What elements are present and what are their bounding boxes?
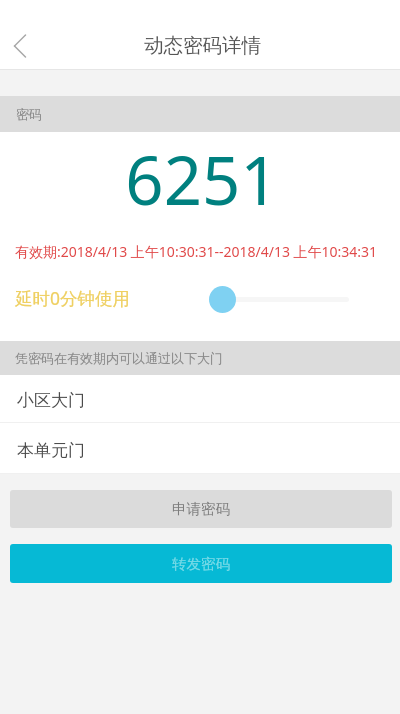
button[interactable]: 小区大门 bbox=[0, 375, 400, 422]
button[interactable]: 申请密码 bbox=[10, 490, 392, 528]
staticText: 小区大门 bbox=[17, 390, 85, 411]
staticText: 凭密码在有效期内可以通过以下大门 bbox=[15, 350, 223, 366]
staticText: 本单元门 bbox=[17, 440, 85, 461]
button[interactable]: 本单元门 bbox=[0, 423, 400, 473]
button[interactable]: 转发密码 bbox=[10, 544, 392, 583]
button[interactable]: Back bbox=[0, 23, 46, 69]
button[interactable]: Delay slider bbox=[209, 286, 236, 313]
staticText: 动态密码详情 bbox=[144, 33, 261, 58]
staticText: 转发密码 bbox=[172, 555, 230, 573]
staticText: 6251 bbox=[2, 133, 400, 224]
staticText: 延时0分钟使用 bbox=[15, 286, 131, 310]
staticText: 有效期:2018/4/13 上午10:30:31--2018/4/13 上午10… bbox=[15, 242, 378, 261]
staticText: 密码 bbox=[16, 106, 42, 122]
staticText: 申请密码 bbox=[172, 500, 230, 518]
